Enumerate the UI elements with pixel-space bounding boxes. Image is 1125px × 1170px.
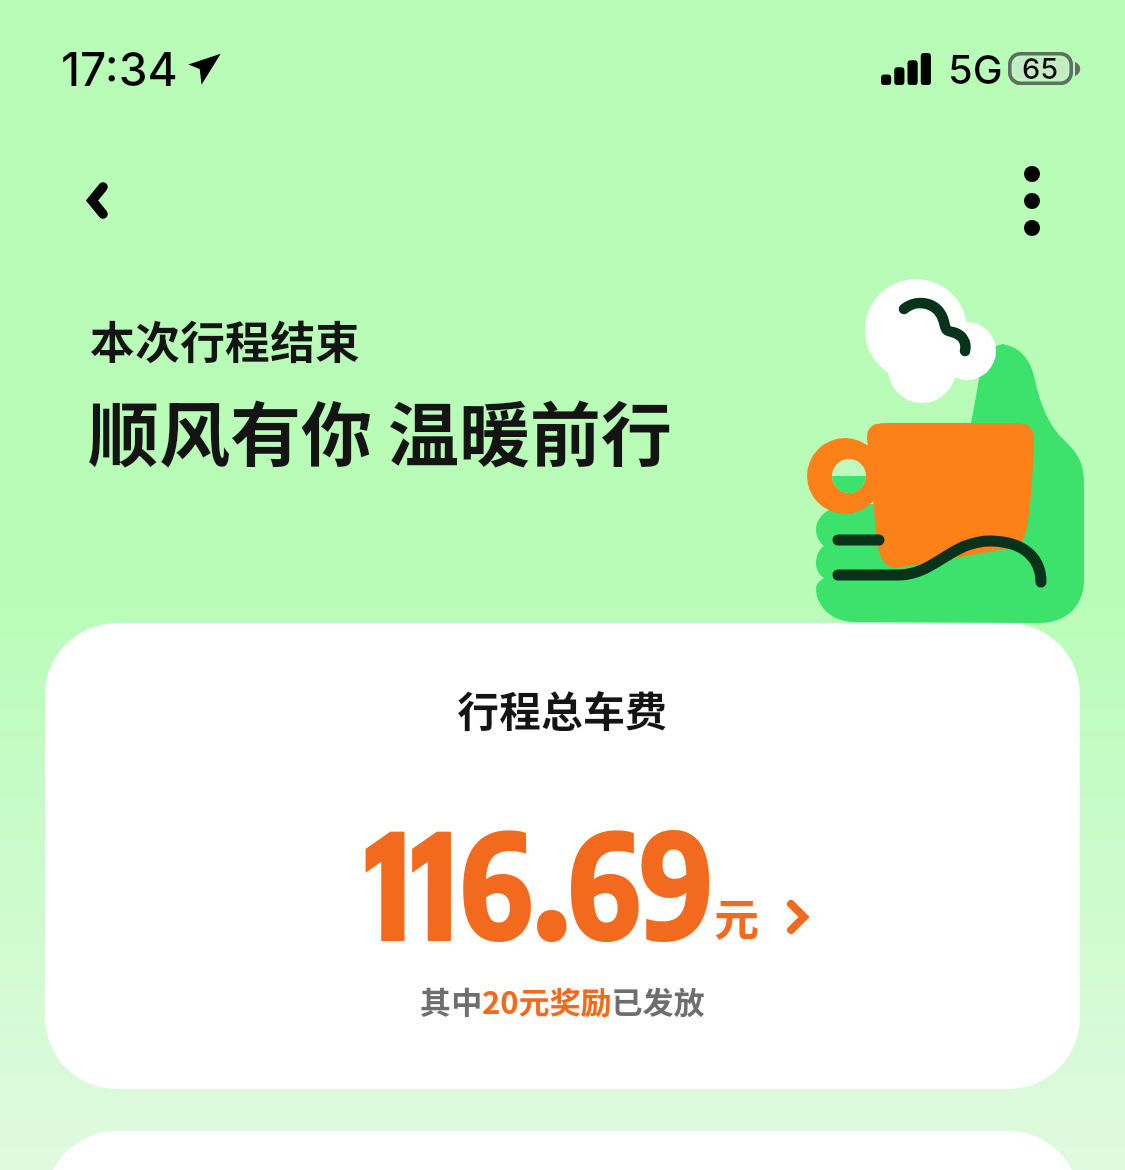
staticText: 本次行程结束 <box>90 307 361 372</box>
staticText: 116.69 <box>365 790 715 974</box>
button[interactable] <box>45 1131 1080 1170</box>
staticText: 行程总车费 <box>457 678 668 739</box>
staticText: 顺风有你 温暖前行 <box>88 379 673 482</box>
staticText: 其中20元奖励已发放 <box>420 978 705 1023</box>
staticText: 65 <box>1022 51 1059 84</box>
staticText: 元 <box>714 884 760 949</box>
staticText: 17:34 <box>61 41 178 97</box>
staticText: 5G <box>948 45 1003 93</box>
button[interactable]: 行程总车费 <box>45 623 1080 1089</box>
button[interactable]: Back <box>55 160 135 240</box>
button[interactable]: More options <box>992 161 1072 241</box>
